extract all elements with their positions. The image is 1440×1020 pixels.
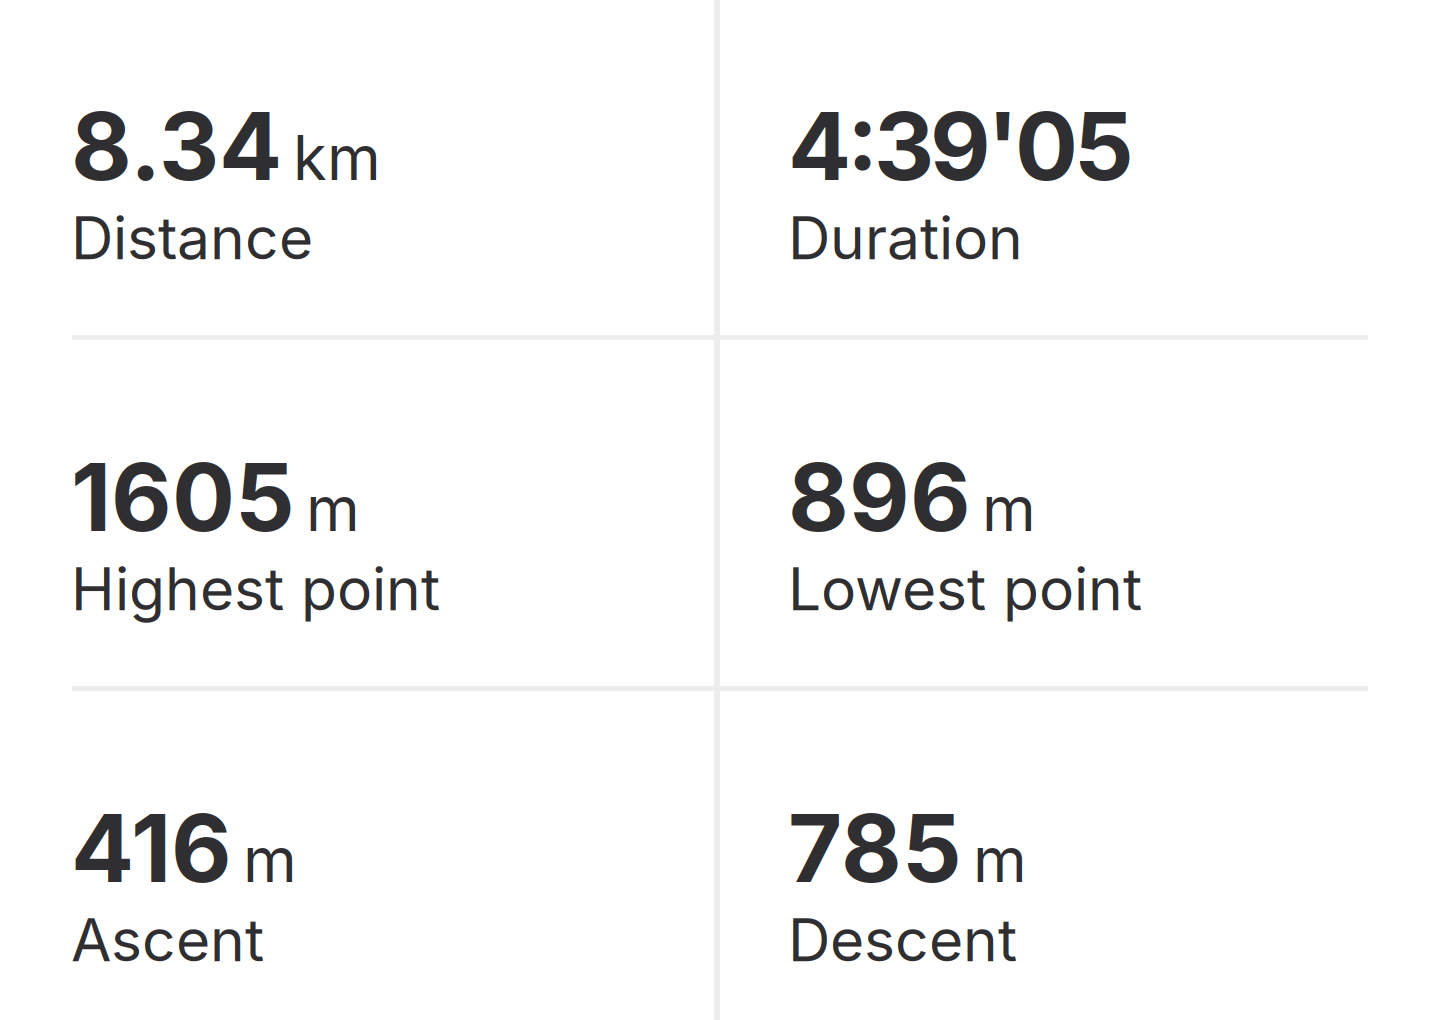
staticText: 8.34 <box>71 89 282 202</box>
staticText: km <box>293 120 381 195</box>
staticText: Highest point <box>71 553 440 624</box>
staticText: 416 <box>71 791 232 904</box>
button[interactable]: 1605 <box>0 336 717 687</box>
button[interactable]: 416 <box>0 687 717 1020</box>
staticText: Lowest point <box>788 553 1142 624</box>
staticText: 1605 <box>71 440 295 553</box>
staticText: Descent <box>788 904 1017 975</box>
staticText: 896 <box>788 440 971 553</box>
button[interactable]: 896 <box>717 336 1440 687</box>
button[interactable]: 785 <box>717 687 1440 1020</box>
staticText: m <box>973 822 1027 897</box>
staticText: 785 <box>788 791 962 904</box>
staticText: m <box>306 471 360 546</box>
staticText: Ascent <box>71 904 264 975</box>
button[interactable]: 4:39'05 <box>717 0 1440 336</box>
staticText: m <box>982 471 1036 546</box>
staticText: Distance <box>71 202 313 273</box>
staticText: 4:39'05 <box>788 89 1134 202</box>
staticText: Duration <box>788 202 1023 273</box>
staticText: m <box>243 822 297 897</box>
button[interactable]: 8.34 <box>0 0 717 336</box>
